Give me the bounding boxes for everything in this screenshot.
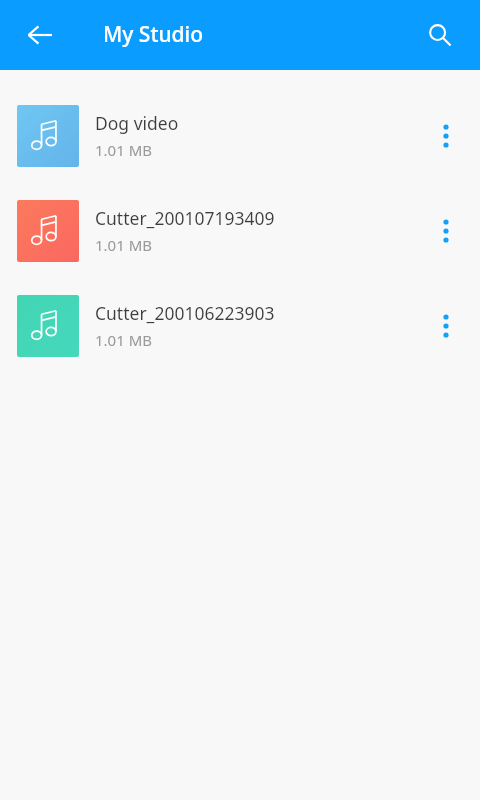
button[interactable]: Back xyxy=(12,7,68,63)
staticText: 1.01 MB xyxy=(95,330,153,350)
staticText: 1.01 MB xyxy=(95,140,153,160)
staticText: My Studio xyxy=(103,20,204,49)
button[interactable]: Cutter_200107193409 xyxy=(0,183,480,278)
button[interactable]: More options xyxy=(418,298,474,354)
button[interactable]: Cutter_200106223903 xyxy=(0,278,480,373)
staticText: Dog video xyxy=(95,111,179,135)
button[interactable]: More options xyxy=(418,108,474,164)
staticText: Cutter_200107193409 xyxy=(95,206,275,230)
button[interactable]: Dog video xyxy=(0,88,480,183)
staticText: Cutter_200106223903 xyxy=(95,301,275,325)
button[interactable]: More options xyxy=(418,203,474,259)
button[interactable]: Search xyxy=(412,7,468,63)
staticText: 1.01 MB xyxy=(95,235,153,255)
